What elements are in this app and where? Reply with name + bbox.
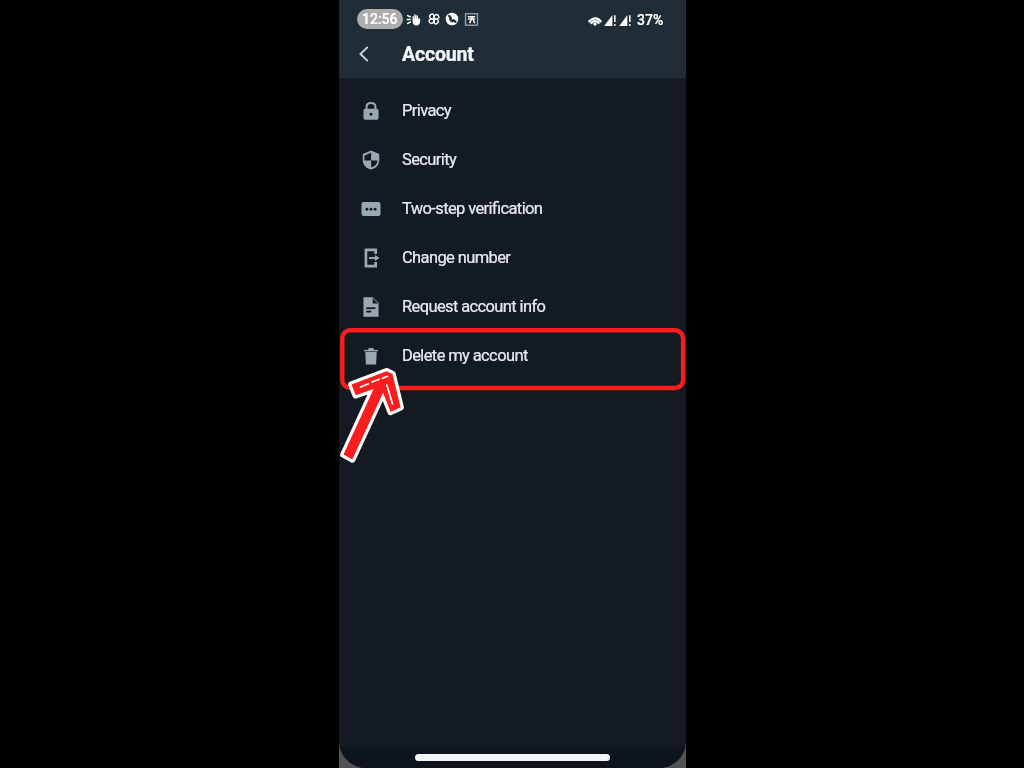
- button[interactable]: Delete my account: [339, 331, 686, 380]
- staticText: Security: [402, 150, 457, 169]
- button[interactable]: Security: [339, 135, 686, 184]
- staticText: Delete my account: [402, 346, 528, 365]
- staticText: Privacy: [402, 101, 451, 120]
- staticText: 12:56: [362, 11, 398, 27]
- button[interactable]: Request account info: [339, 282, 686, 331]
- button[interactable]: Change number: [339, 233, 686, 282]
- button[interactable]: Back: [350, 40, 378, 68]
- button[interactable]: Privacy: [339, 86, 686, 135]
- staticText: Two-step verification: [402, 199, 543, 218]
- staticText: Change number: [402, 248, 511, 267]
- button[interactable]: Two-step verification: [339, 184, 686, 233]
- staticText: 37%: [637, 12, 664, 28]
- staticText: Account: [402, 43, 474, 66]
- staticText: Request account info: [402, 297, 546, 316]
